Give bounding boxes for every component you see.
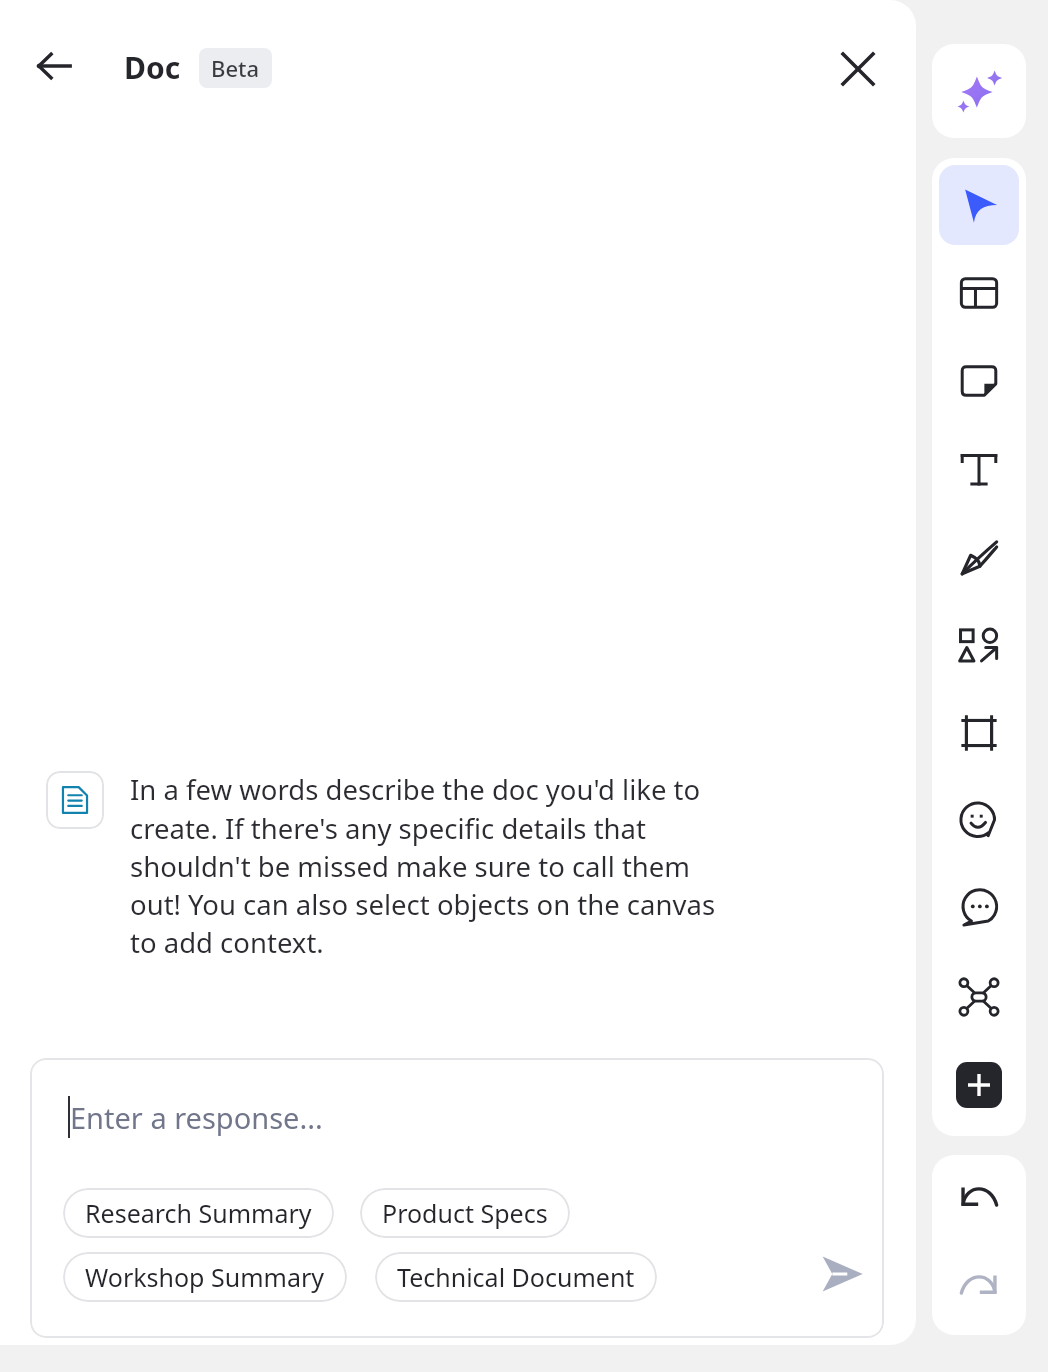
button[interactable]: Pen xyxy=(939,517,1019,597)
staticText: Doc xyxy=(124,47,181,88)
staticText: Technical Document xyxy=(397,1260,635,1294)
button[interactable]: Product Specs xyxy=(360,1188,570,1238)
button[interactable]: Frames xyxy=(939,253,1019,333)
button[interactable]: Sticky note xyxy=(939,341,1019,421)
button[interactable]: Text xyxy=(939,429,1019,509)
button[interactable]: Back xyxy=(26,38,82,94)
button[interactable]: Connector xyxy=(939,957,1019,1037)
button[interactable]: Technical Document xyxy=(375,1252,657,1302)
button[interactable]: AI assistant xyxy=(932,44,1026,138)
staticText: Product Specs xyxy=(382,1196,548,1230)
staticText: Enter a response... xyxy=(70,1098,323,1137)
staticText: In a few words describe the doc you'd li… xyxy=(130,771,746,961)
button[interactable]: Comment xyxy=(939,869,1019,949)
button[interactable]: Send xyxy=(810,1242,874,1306)
button[interactable]: Shapes xyxy=(939,605,1019,685)
button[interactable]: Add xyxy=(939,1045,1019,1125)
button[interactable]: Stickers xyxy=(939,781,1019,861)
button[interactable]: Workshop Summary xyxy=(63,1252,347,1302)
staticText: Beta xyxy=(211,53,260,83)
button[interactable]: Crop frame xyxy=(939,693,1019,773)
staticText: Workshop Summary xyxy=(85,1260,325,1294)
staticText: Research Summary xyxy=(85,1196,312,1230)
button[interactable]: Close xyxy=(829,40,887,98)
button[interactable]: Research Summary xyxy=(63,1188,334,1238)
button[interactable]: Select xyxy=(939,165,1019,245)
button[interactable]: Redo xyxy=(947,1251,1011,1315)
button[interactable]: Undo xyxy=(947,1163,1011,1227)
